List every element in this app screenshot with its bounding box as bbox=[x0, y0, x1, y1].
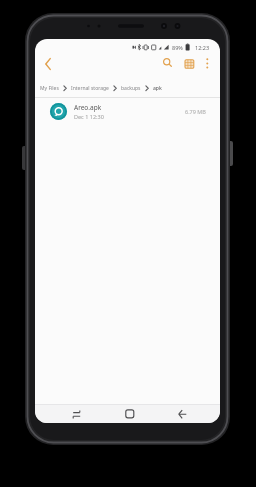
staticText: 6.79 MB bbox=[185, 108, 206, 115]
button[interactable]: apk bbox=[153, 85, 162, 92]
button[interactable] bbox=[121, 405, 139, 423]
button[interactable] bbox=[160, 55, 176, 71]
staticText: 12:23 bbox=[195, 44, 210, 51]
staticText: Dec 1 12:30 bbox=[74, 113, 104, 120]
button[interactable] bbox=[68, 405, 86, 423]
button[interactable] bbox=[41, 55, 57, 73]
button[interactable] bbox=[201, 56, 213, 70]
staticText: 89% bbox=[172, 44, 183, 51]
button[interactable]: backups bbox=[121, 85, 141, 92]
button[interactable]: My Files bbox=[40, 85, 59, 92]
button[interactable] bbox=[182, 56, 196, 70]
button[interactable] bbox=[174, 405, 192, 423]
button[interactable]: Areo.apk bbox=[35, 99, 220, 125]
button[interactable]: Internal storage bbox=[71, 85, 109, 92]
staticText: Areo.apk bbox=[74, 103, 102, 112]
